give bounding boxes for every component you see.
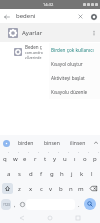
staticText: binsen <box>44 140 60 147</box>
staticText: l <box>91 170 93 178</box>
staticText: f <box>40 170 43 178</box>
button[interactable]: k <box>77 166 87 181</box>
button[interactable]: More options <box>87 26 100 39</box>
staticText: ' <box>78 152 79 156</box>
button[interactable]: j <box>67 166 77 181</box>
button[interactable]: ilinsen <box>65 135 91 151</box>
button[interactable]: r <box>30 151 40 166</box>
staticText: y <box>53 155 57 163</box>
staticText: ' <box>38 152 39 156</box>
staticText: ' <box>18 152 19 156</box>
button[interactable]: More suggestions <box>91 135 100 151</box>
button[interactable]: y <box>50 151 60 166</box>
staticText: t <box>44 155 47 163</box>
button[interactable]: b <box>56 181 66 196</box>
button[interactable]: c <box>36 181 46 196</box>
staticText: p <box>93 155 97 163</box>
button[interactable]: binsen <box>39 135 65 151</box>
button[interactable]: Back <box>16 212 27 223</box>
button[interactable]: l <box>87 166 97 181</box>
staticText: z <box>18 185 21 193</box>
button[interactable]: e <box>20 151 30 166</box>
button[interactable]: Aktiviteyi başlat <box>49 71 100 85</box>
staticText: ' <box>28 152 29 156</box>
button[interactable]: w <box>10 151 20 166</box>
button[interactable]: p <box>90 151 100 166</box>
staticText: ı <box>74 155 76 163</box>
button[interactable]: Emoji <box>18 196 26 212</box>
button[interactable]: v <box>46 181 56 196</box>
button[interactable]: z <box>14 181 25 196</box>
button[interactable]: Ayarlar <box>0 23 100 42</box>
staticText: , <box>14 201 16 208</box>
staticText: d <box>29 170 33 178</box>
staticText: com.andro <box>25 50 43 55</box>
staticText: r <box>34 155 37 163</box>
button[interactable]: Beden ç <box>0 42 100 62</box>
staticText: 14:32 <box>43 2 54 7</box>
staticText: k <box>80 170 84 178</box>
button[interactable]: Clear <box>74 10 87 23</box>
staticText: Kısayol oluştur <box>51 61 83 67</box>
button[interactable]: m <box>76 181 86 196</box>
staticText: . <box>78 201 80 208</box>
button[interactable]: q <box>0 151 10 166</box>
staticText: Beden ç <box>25 44 42 50</box>
button[interactable]: g <box>47 166 57 181</box>
button[interactable]: Settings <box>87 10 100 23</box>
staticText: ilinsen <box>70 140 86 147</box>
staticText: ' <box>48 152 49 156</box>
button[interactable]: Recents <box>72 212 83 223</box>
staticText: b <box>59 185 63 193</box>
button[interactable]: Shift <box>0 181 14 196</box>
staticText: u <box>63 155 67 163</box>
staticText: o <box>83 155 87 163</box>
staticText: j <box>71 170 73 178</box>
button[interactable]: x <box>25 181 36 196</box>
staticText: e <box>23 155 27 163</box>
staticText: Aktiviteyi başlat <box>51 75 85 81</box>
button[interactable]: ı <box>70 151 80 166</box>
button[interactable]: Assistant <box>0 135 13 151</box>
staticText: v <box>49 185 53 193</box>
staticText: c <box>40 185 43 193</box>
button[interactable]: Search <box>82 196 97 212</box>
staticText: ' <box>68 152 69 156</box>
staticText: zÜzerinde <box>25 55 42 60</box>
button[interactable]: o <box>80 151 90 166</box>
staticText: g <box>50 170 54 178</box>
staticText: Birden çok kullanıcı <box>51 47 94 53</box>
staticText: Ayarlar <box>22 29 43 37</box>
button[interactable]: u <box>60 151 70 166</box>
button[interactable]: Space <box>26 196 75 212</box>
staticText: ?123 <box>3 203 10 207</box>
button[interactable]: Back <box>0 10 13 23</box>
staticText: q <box>3 155 7 163</box>
staticText: ' <box>8 152 9 156</box>
button[interactable]: birden <box>13 135 39 151</box>
button[interactable]: , <box>11 196 18 212</box>
staticText: n <box>69 185 73 193</box>
button[interactable]: Home <box>44 212 55 223</box>
button[interactable]: Birden çok kullanıcı <box>49 43 100 57</box>
staticText: Kısayolu düzenle <box>51 89 88 95</box>
button[interactable]: Symbols <box>1 199 11 210</box>
staticText: bedeni <box>16 12 36 20</box>
button[interactable]: f <box>36 166 47 181</box>
staticText: s <box>18 170 21 178</box>
button[interactable]: a <box>3 166 14 181</box>
button[interactable]: t <box>40 151 50 166</box>
button[interactable]: Backspace <box>86 181 100 196</box>
button[interactable]: Kısayolu düzenle <box>49 85 100 99</box>
button[interactable]: s <box>14 166 25 181</box>
staticText: x <box>29 185 33 193</box>
button[interactable]: h <box>57 166 67 181</box>
staticText: a <box>7 170 11 178</box>
staticText: ' <box>98 152 99 156</box>
button[interactable]: n <box>66 181 76 196</box>
staticText: ' <box>58 152 59 156</box>
button[interactable]: . <box>75 196 82 212</box>
button[interactable]: d <box>25 166 36 181</box>
button[interactable]: Kısayol oluştur <box>49 57 100 71</box>
staticText: h <box>60 170 64 178</box>
